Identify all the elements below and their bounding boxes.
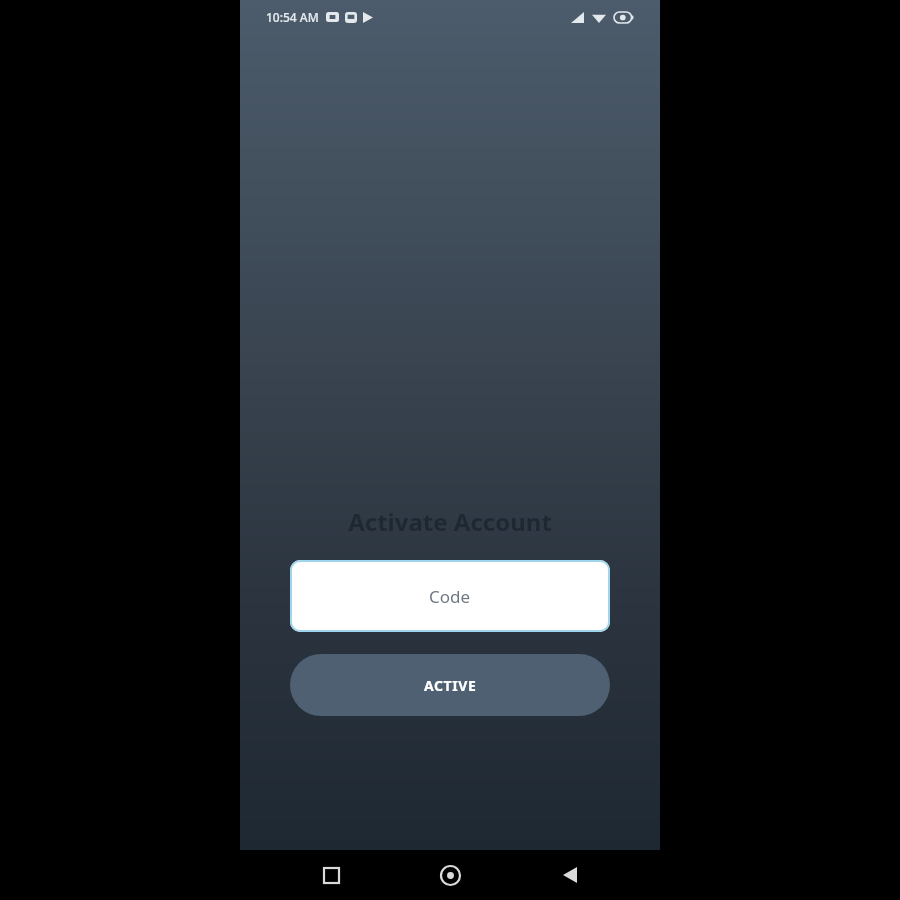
button[interactable]: Code: [290, 560, 610, 632]
staticText: ACTIVE: [424, 676, 477, 695]
button[interactable]: Home: [421, 850, 479, 900]
staticText: Activate Account: [348, 505, 552, 538]
button[interactable]: Back: [541, 850, 599, 900]
staticText: 10:54 AM: [266, 9, 319, 25]
button[interactable]: ACTIVE: [290, 654, 610, 716]
staticText: Code: [429, 585, 471, 608]
button[interactable]: Recent apps: [302, 850, 360, 900]
